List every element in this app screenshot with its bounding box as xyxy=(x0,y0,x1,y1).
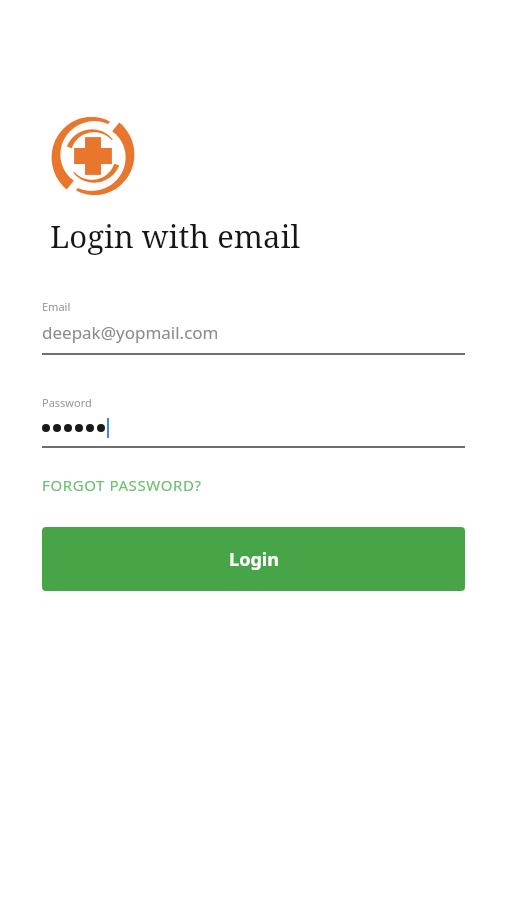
staticText: Login with email xyxy=(50,215,301,257)
button[interactable]: Login xyxy=(42,527,465,591)
staticText: Email xyxy=(42,299,71,314)
button[interactable]: FORGOT PASSWORD? xyxy=(42,475,202,495)
staticText: FORGOT PASSWORD? xyxy=(42,475,202,495)
staticText: Login xyxy=(229,547,279,572)
button[interactable]: Password xyxy=(42,395,465,448)
staticText: Password xyxy=(42,395,92,410)
button[interactable]: Email xyxy=(42,299,465,355)
staticText: deepak@yopmail.com xyxy=(42,321,219,344)
